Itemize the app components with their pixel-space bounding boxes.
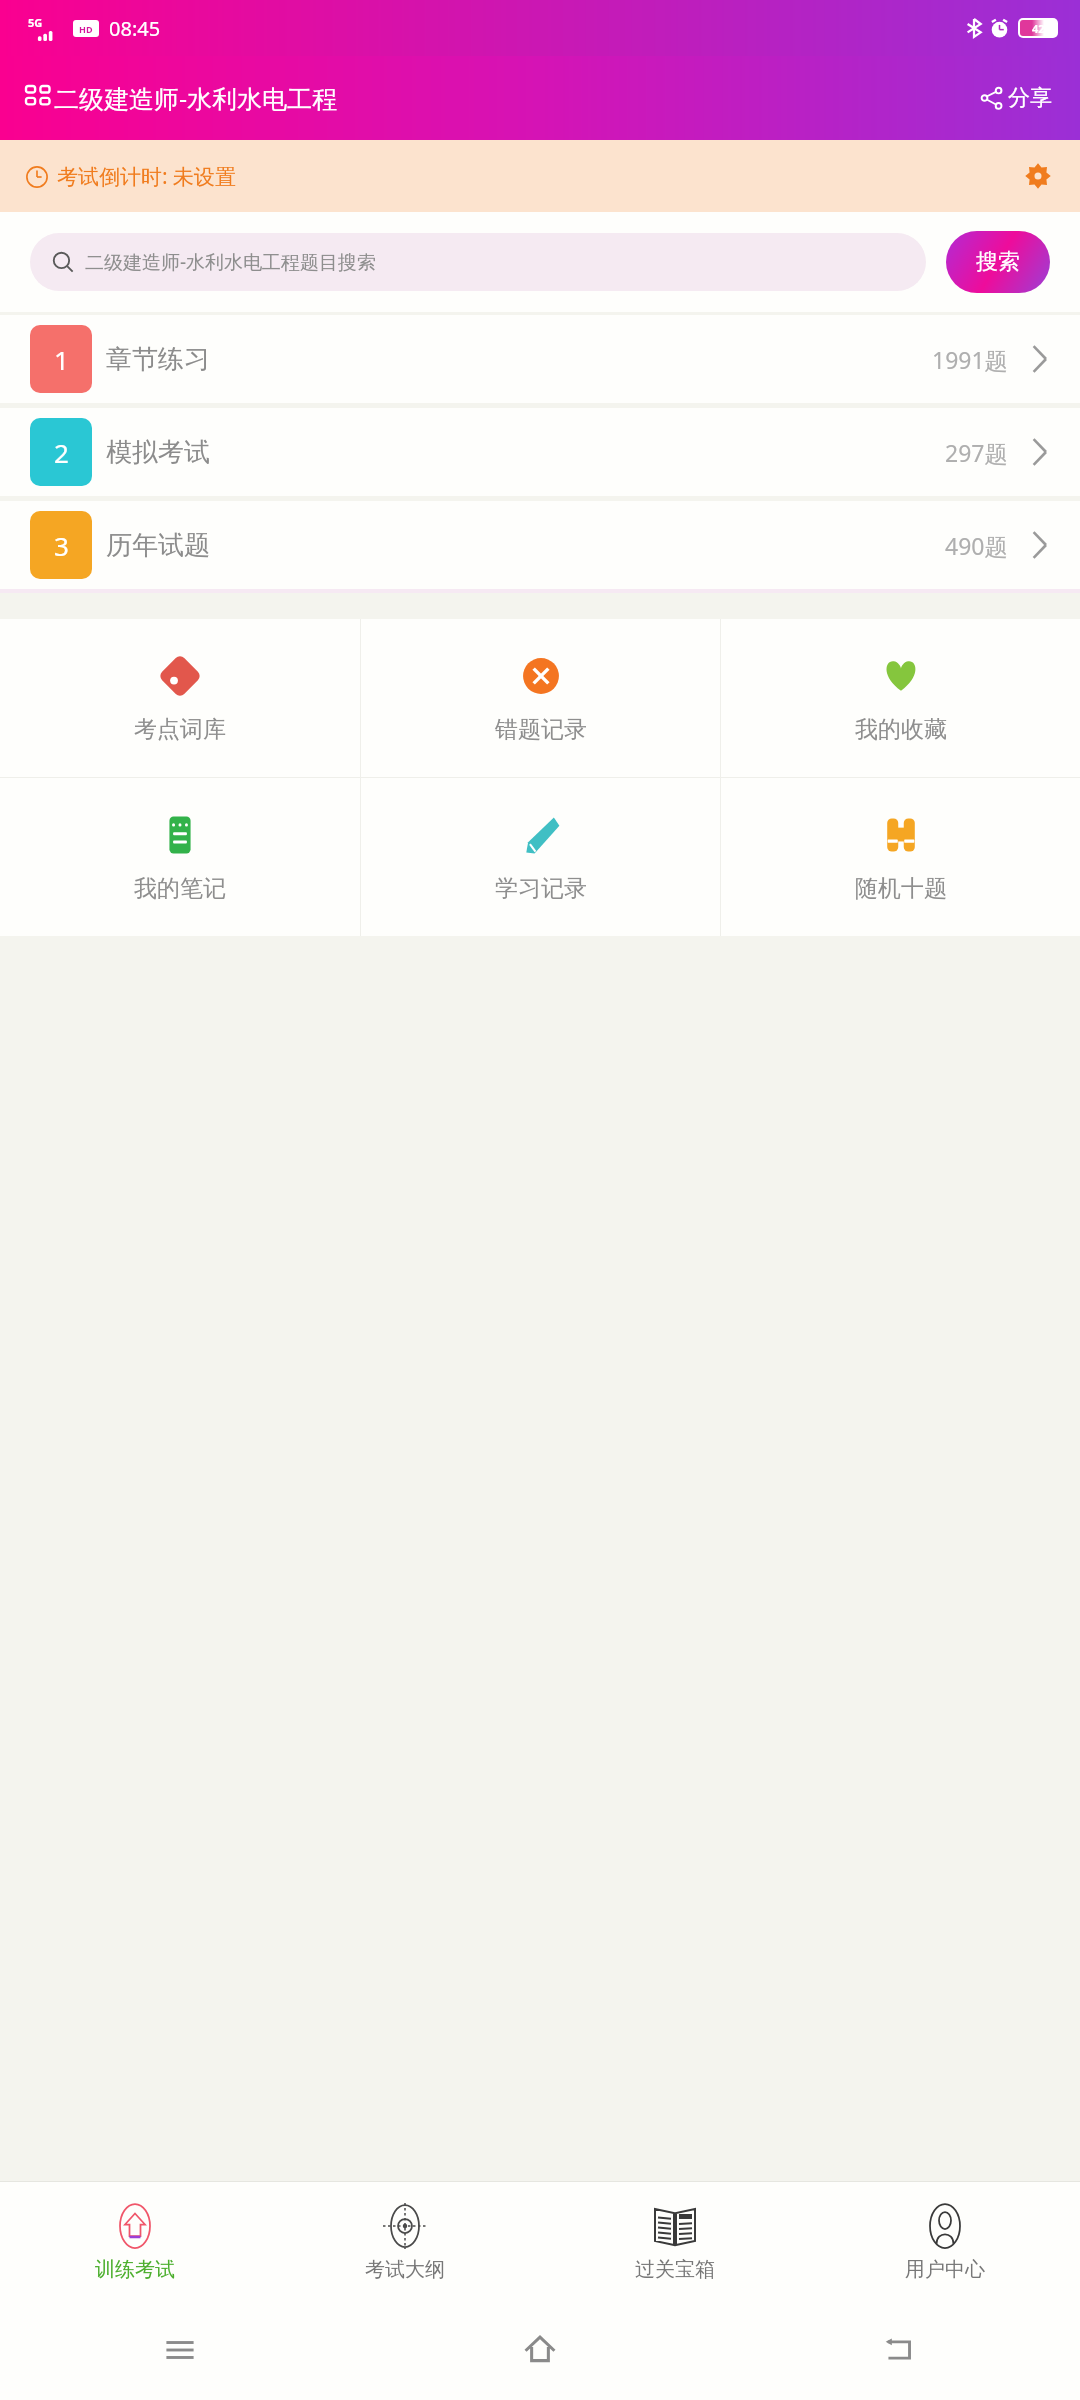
staticText: 考试大纲 bbox=[365, 2257, 445, 2282]
button[interactable]: 训练考试 bbox=[0, 2182, 270, 2300]
staticText: 搜索 bbox=[976, 248, 1020, 276]
staticText: 考点词库 bbox=[134, 715, 226, 744]
button[interactable]: 过关宝箱 bbox=[540, 2182, 810, 2300]
staticText: 二级建造师-水利水电工程 bbox=[54, 81, 338, 115]
staticText: 错题记录 bbox=[495, 715, 587, 744]
staticText: 章节练习 bbox=[106, 343, 210, 376]
button[interactable]: 学习记录 bbox=[361, 778, 720, 936]
button[interactable]: 考点词库 bbox=[0, 619, 360, 777]
button[interactable]: 我的笔记 bbox=[0, 778, 360, 936]
button[interactable]: 分享 bbox=[977, 78, 1056, 118]
button[interactable]: 1 bbox=[0, 315, 1080, 403]
button[interactable]: 随机十题 bbox=[721, 778, 1080, 936]
staticText: 1991题 bbox=[932, 344, 1008, 375]
staticText: 用户中心 bbox=[905, 2257, 985, 2282]
staticText: 二级建造师-水利水电工程题目搜索 bbox=[85, 249, 377, 275]
button[interactable]: 设置 bbox=[1018, 156, 1058, 196]
button[interactable]: 二级建造师-水利水电工程 bbox=[26, 81, 338, 115]
staticText: 我的笔记 bbox=[134, 874, 226, 903]
button[interactable]: 2 bbox=[0, 408, 1080, 496]
staticText: 过关宝箱 bbox=[635, 2257, 715, 2282]
staticText: 5G bbox=[28, 15, 43, 30]
staticText: 08:45 bbox=[109, 15, 161, 42]
staticText: 1 bbox=[54, 342, 69, 377]
button[interactable]: 考试大纲 bbox=[270, 2182, 540, 2300]
button[interactable]: Recents bbox=[0, 2300, 360, 2400]
staticText: 2 bbox=[54, 435, 69, 470]
staticText: 学习记录 bbox=[495, 874, 587, 903]
button[interactable]: 3 bbox=[0, 501, 1080, 589]
button[interactable]: Back bbox=[720, 2300, 1080, 2400]
staticText: 分享 bbox=[1008, 84, 1052, 112]
button[interactable]: 错题记录 bbox=[361, 619, 720, 777]
staticText: 297题 bbox=[945, 437, 1008, 468]
staticText: 3 bbox=[54, 528, 69, 563]
staticText: 训练考试 bbox=[95, 2257, 175, 2282]
button[interactable]: 用户中心 bbox=[810, 2182, 1080, 2300]
button[interactable]: Home bbox=[360, 2300, 720, 2400]
button[interactable]: 搜索 bbox=[946, 231, 1050, 293]
staticText: HD bbox=[79, 23, 93, 35]
button[interactable]: 二级建造师-水利水电工程题目搜索 bbox=[30, 233, 926, 291]
staticText: 模拟考试 bbox=[106, 436, 210, 469]
staticText: 考试倒计时: 未设置 bbox=[57, 162, 237, 191]
staticText: 我的收藏 bbox=[855, 715, 947, 744]
button[interactable]: 考试倒计时: 未设置 bbox=[0, 140, 1080, 212]
button[interactable]: 我的收藏 bbox=[721, 619, 1080, 777]
staticText: 490题 bbox=[945, 530, 1008, 561]
staticText: 随机十题 bbox=[855, 874, 947, 903]
staticText: 历年试题 bbox=[106, 529, 210, 562]
staticText: 42 bbox=[1032, 21, 1045, 36]
